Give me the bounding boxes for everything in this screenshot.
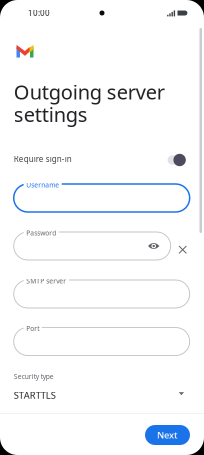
staticText: Outgoing server — [14, 78, 165, 105]
staticText: Next — [157, 429, 178, 441]
staticText: Security type — [14, 372, 54, 381]
staticText: SMTP server — [26, 276, 66, 285]
staticText: settings — [14, 101, 88, 128]
button[interactable]: Security type — [14, 371, 190, 403]
button[interactable]: Clear password — [174, 241, 191, 258]
staticText: STARTTLS — [14, 389, 56, 401]
staticText: Port — [26, 324, 39, 333]
staticText: 10:00 — [28, 8, 50, 18]
staticText: Require sign-in — [14, 153, 72, 164]
button[interactable]: Require sign-in — [165, 151, 189, 169]
button[interactable]: Next — [145, 425, 190, 445]
staticText: Password — [26, 228, 56, 237]
staticText: Username — [26, 180, 59, 189]
